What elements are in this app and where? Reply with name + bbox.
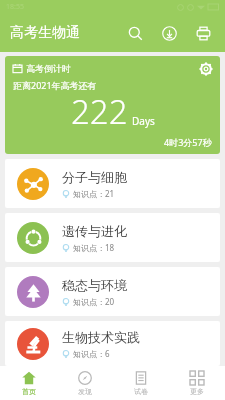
staticText: 知识点：6 [73, 348, 110, 359]
staticText: 知识点：18 [73, 242, 115, 253]
button[interactable]: 分子与细胞 [5, 159, 220, 208]
staticText: 18:55 [6, 2, 24, 12]
staticText: 首页 [22, 387, 36, 396]
button[interactable]: Print [189, 19, 217, 47]
button[interactable]: 发现 [57, 366, 113, 400]
button[interactable]: Settings [196, 59, 216, 79]
staticText: 222 [71, 89, 128, 134]
staticText: 更多 [190, 387, 204, 396]
button[interactable]: 首页 [0, 366, 57, 400]
staticText: Days [132, 114, 155, 128]
staticText: 遗传与进化 [62, 223, 127, 239]
button[interactable]: Search [121, 19, 149, 47]
staticText: 距离2021年高考还有 [13, 79, 97, 91]
button[interactable]: 遗传与进化 [5, 213, 220, 262]
staticText: 发现 [78, 387, 92, 396]
staticText: 知识点：21 [73, 188, 115, 199]
button[interactable]: 更多 [169, 366, 225, 400]
staticText: 高考倒计时 [26, 63, 71, 74]
staticText: 知识点：20 [73, 296, 115, 307]
staticText: 4时3分57秒 [164, 136, 212, 148]
button[interactable]: 稳态与环境 [5, 267, 220, 316]
staticText: 分子与细胞 [62, 169, 127, 185]
staticText: 稳态与环境 [62, 277, 127, 293]
button[interactable]: 高考倒计时 [5, 56, 220, 154]
button[interactable]: 生物技术实践 [5, 321, 220, 366]
button[interactable]: 试卷 [113, 366, 169, 400]
button[interactable]: Download [155, 19, 183, 47]
staticText: 高考生物通 [10, 24, 80, 42]
staticText: 生物技术实践 [62, 329, 140, 345]
staticText: 试卷 [134, 387, 148, 396]
